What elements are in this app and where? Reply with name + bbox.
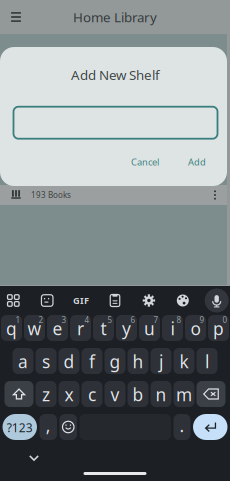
staticText: Home Library	[73, 8, 157, 26]
button[interactable]: Keyboard settings	[135, 287, 163, 314]
staticText: Add	[188, 156, 206, 168]
staticText: s	[42, 350, 50, 373]
button[interactable]: d	[58, 348, 79, 374]
staticText: v	[110, 383, 119, 406]
button[interactable]: g	[104, 348, 125, 374]
button[interactable]: p	[208, 315, 229, 341]
staticText: a	[18, 350, 28, 373]
staticText: 5	[107, 315, 112, 325]
button[interactable]: w	[24, 315, 45, 341]
button[interactable]: s	[35, 348, 56, 374]
staticText: j	[159, 350, 163, 373]
staticText: 8	[176, 315, 181, 325]
staticText: w	[27, 317, 41, 340]
staticText: l	[205, 350, 209, 373]
staticText: b	[132, 383, 143, 406]
staticText: f	[89, 350, 95, 373]
button[interactable]: y	[116, 315, 137, 341]
button[interactable]: i	[162, 315, 183, 341]
button[interactable]: Backspace	[196, 381, 225, 407]
staticText: x	[64, 383, 73, 406]
button[interactable]: Enter	[193, 414, 227, 440]
button[interactable]: Menu	[0, 0, 32, 34]
button[interactable]: Clipboard	[101, 287, 129, 314]
button[interactable]: c	[81, 381, 102, 407]
button[interactable]: z	[35, 381, 56, 407]
button[interactable]: Emoji	[59, 414, 77, 440]
button[interactable]: m	[173, 381, 194, 407]
button[interactable]: r	[70, 315, 91, 341]
staticText: ,	[46, 414, 51, 437]
staticText: 193 Books	[31, 190, 71, 200]
staticText: y	[122, 317, 131, 340]
button[interactable]: Themes	[169, 287, 197, 314]
staticText: g	[109, 350, 120, 373]
staticText: 7	[153, 315, 158, 325]
button[interactable]: Keyboard switcher	[0, 287, 27, 314]
button[interactable]: q	[1, 315, 22, 341]
staticText: e	[52, 317, 62, 340]
button[interactable]: b	[127, 381, 148, 407]
button[interactable]: Shift	[4, 381, 33, 407]
staticText: z	[42, 383, 50, 406]
staticText: k	[179, 350, 188, 373]
staticText: o	[190, 317, 200, 340]
button[interactable]: k	[173, 348, 194, 374]
button[interactable]: Cancel	[124, 150, 166, 174]
staticText: p	[213, 317, 224, 340]
button[interactable]: l	[196, 348, 217, 374]
button[interactable]: ?123	[2, 414, 37, 440]
button[interactable]: Stickers	[33, 287, 61, 314]
staticText: 4	[84, 315, 89, 325]
staticText: Add New Shelf	[71, 66, 160, 84]
staticText: 3	[61, 315, 66, 325]
staticText: r	[77, 317, 84, 340]
staticText: 9	[199, 315, 204, 325]
staticText: i	[170, 317, 174, 340]
button[interactable]: o	[185, 315, 206, 341]
staticText: ?123	[7, 419, 33, 435]
staticText: q	[6, 317, 17, 340]
button[interactable]	[203, 287, 230, 314]
staticText: .	[179, 414, 184, 437]
staticText: d	[63, 350, 74, 373]
button[interactable]: a	[12, 348, 33, 374]
staticText: GIF	[73, 294, 89, 307]
button[interactable]: e	[47, 315, 68, 341]
staticText: u	[144, 317, 155, 340]
button[interactable]: n	[150, 381, 171, 407]
staticText: n	[155, 383, 166, 406]
button[interactable]: f	[81, 348, 102, 374]
staticText: 0	[222, 315, 227, 325]
staticText: 2	[38, 315, 43, 325]
staticText: 1	[15, 315, 20, 325]
button[interactable]: u	[139, 315, 160, 341]
staticText: c	[88, 383, 96, 406]
button[interactable]: .	[173, 414, 190, 440]
button[interactable]: t	[93, 315, 114, 341]
staticText: h	[132, 350, 143, 373]
button[interactable]: ,	[39, 414, 57, 440]
button[interactable]: v	[104, 381, 125, 407]
button[interactable]: h	[127, 348, 148, 374]
button[interactable]: Add	[181, 150, 213, 174]
staticText: 6	[130, 315, 135, 325]
staticText: Cancel	[131, 156, 159, 168]
button[interactable]: Hide keyboard	[14, 446, 54, 470]
button[interactable]: GIF	[67, 287, 95, 314]
staticText: t	[100, 317, 106, 340]
staticText: m	[176, 383, 192, 406]
button[interactable]: j	[150, 348, 171, 374]
button[interactable]: x	[58, 381, 79, 407]
